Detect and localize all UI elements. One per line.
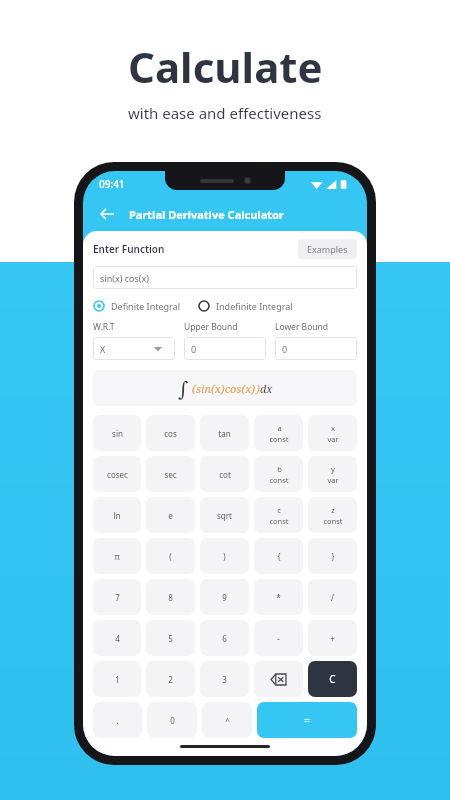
staticText: Examples <box>307 243 348 255</box>
staticText: * <box>276 592 281 603</box>
button[interactable]: 5 <box>146 620 195 656</box>
button[interactable]: 3 <box>200 661 249 697</box>
staticText: 0 <box>170 715 175 726</box>
button[interactable]: cosec <box>93 456 141 492</box>
staticText: z <box>331 505 335 515</box>
button[interactable]: - <box>254 620 303 656</box>
staticText: x <box>331 423 335 433</box>
staticText: π <box>114 551 120 562</box>
staticText: tan <box>218 428 231 439</box>
button[interactable]: e <box>146 497 195 533</box>
button[interactable]: + <box>308 620 357 656</box>
staticText: . <box>116 715 119 726</box>
staticText: b <box>277 464 282 474</box>
button[interactable]: } <box>308 538 357 574</box>
button[interactable]: / <box>308 579 357 615</box>
button[interactable]: ln <box>93 497 141 533</box>
button[interactable]: { <box>254 538 303 574</box>
button[interactable]: Backspace <box>254 661 303 697</box>
staticText: ∫ <box>178 377 189 400</box>
button[interactable]: a <box>254 415 303 451</box>
button[interactable]: 6 <box>200 620 249 656</box>
staticText: const <box>269 434 289 444</box>
button[interactable]: 2 <box>146 661 195 697</box>
button[interactable]: 0 <box>275 337 357 360</box>
staticText: = <box>304 713 310 727</box>
staticText: const <box>269 516 289 526</box>
staticText: ( <box>192 381 196 396</box>
button[interactable]: ( <box>146 538 195 574</box>
button[interactable]: sin <box>93 415 141 451</box>
staticText: Indefinite Integral <box>216 300 293 312</box>
staticText: Enter Function <box>93 242 165 256</box>
staticText: 6 <box>222 633 227 644</box>
staticText: with ease and effectiveness <box>128 103 322 123</box>
staticText: const <box>269 475 289 485</box>
staticText: cot <box>219 469 231 480</box>
button[interactable]: 4 <box>93 620 141 656</box>
staticText: dx <box>260 381 273 396</box>
button[interactable]: * <box>254 579 303 615</box>
button[interactable]: cot <box>200 456 249 492</box>
button[interactable]: 9 <box>200 579 249 615</box>
button[interactable]: ) <box>200 538 249 574</box>
staticText: sqrt <box>217 510 232 521</box>
button[interactable]: sqrt <box>200 497 249 533</box>
staticText: sin(x) cos(x) <box>100 272 149 284</box>
staticText: W.R.T <box>93 321 115 333</box>
staticText: 1 <box>115 674 120 685</box>
staticText: 2 <box>168 674 173 685</box>
staticText: X <box>100 343 106 355</box>
staticText: Calculate <box>128 38 323 95</box>
staticText: Definite Integral <box>111 300 180 312</box>
button[interactable]: tan <box>200 415 249 451</box>
button[interactable]: π <box>93 538 141 574</box>
staticText: 8 <box>168 592 173 603</box>
button[interactable]: y <box>308 456 357 492</box>
button[interactable]: Examples <box>298 239 357 259</box>
staticText: sec <box>164 469 177 480</box>
button[interactable]: 8 <box>146 579 195 615</box>
staticText: { <box>277 551 281 562</box>
button[interactable]: Definite Integral <box>93 300 180 312</box>
button[interactable]: 0 <box>184 337 266 360</box>
staticText: / <box>331 592 334 603</box>
staticText: Lower Bound <box>275 321 329 333</box>
button[interactable]: sec <box>146 456 195 492</box>
button[interactable]: b <box>254 456 303 492</box>
staticText: 9 <box>222 592 227 603</box>
button[interactable]: x <box>308 415 357 451</box>
staticText: var <box>327 434 339 444</box>
staticText: e <box>168 510 173 521</box>
button[interactable]: cos <box>146 415 195 451</box>
button[interactable]: . <box>93 702 142 738</box>
staticText: cosec <box>107 469 128 480</box>
staticText: 4 <box>115 633 120 644</box>
staticText: sin(x)cos(x) <box>196 381 256 396</box>
staticText: 3 <box>222 674 227 685</box>
staticText: - <box>277 633 280 644</box>
button[interactable]: 1 <box>93 661 141 697</box>
staticText: Upper Bound <box>184 321 238 333</box>
staticText: ) <box>256 381 260 396</box>
staticText: 09:41 <box>99 177 125 191</box>
staticText: var <box>327 475 339 485</box>
button[interactable]: c <box>254 497 303 533</box>
button[interactable]: sin(x) cos(x) <box>93 266 357 289</box>
staticText: cos <box>164 428 177 439</box>
staticText: ) <box>223 551 226 562</box>
button[interactable]: Indefinite Integral <box>198 300 293 312</box>
staticText: 0 <box>282 343 288 355</box>
staticText: ^ <box>225 715 230 726</box>
button[interactable]: 7 <box>93 579 141 615</box>
button[interactable]: z <box>308 497 357 533</box>
staticText: } <box>331 551 335 562</box>
button[interactable]: C <box>308 661 357 697</box>
button[interactable]: ^ <box>202 702 252 738</box>
button[interactable]: 0 <box>147 702 197 738</box>
staticText: 7 <box>115 592 120 603</box>
button[interactable]: = <box>257 702 357 738</box>
staticText: const <box>323 516 343 526</box>
button[interactable]: Back <box>97 204 117 224</box>
button[interactable]: X <box>93 337 175 360</box>
